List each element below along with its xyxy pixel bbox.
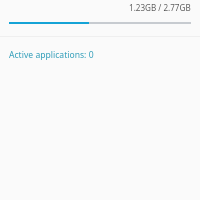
staticText: Active applications: 0 [9, 49, 94, 61]
staticText: 1.23GB / 2.77GB [129, 2, 191, 13]
other: Storage used 1.23GB of 2.77GB [9, 22, 191, 24]
button[interactable]: Active applications: 0 [0, 38, 200, 72]
